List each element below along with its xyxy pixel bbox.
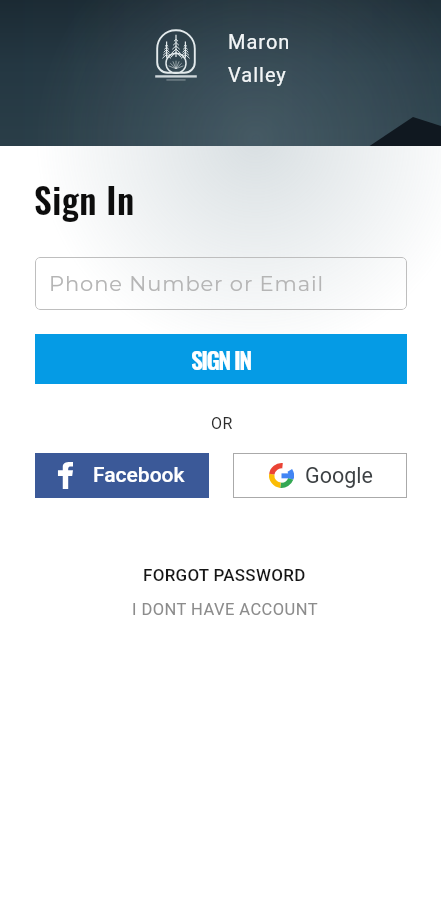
- staticText: I DONT HAVE ACCOUNT: [132, 600, 319, 619]
- staticText: FORGOT PASSWORD: [143, 565, 306, 585]
- button[interactable]: FORGOT PASSWORD: [137, 563, 312, 587]
- staticText: Sign In: [34, 173, 135, 225]
- staticText: Google: [305, 463, 373, 488]
- button[interactable]: SIGN IN: [35, 334, 407, 384]
- staticText: Facebook: [93, 463, 185, 488]
- staticText: Maron: [228, 30, 291, 53]
- button[interactable]: Google: [233, 453, 407, 498]
- button[interactable]: I DONT HAVE ACCOUNT: [126, 598, 325, 621]
- button[interactable]: Facebook: [35, 453, 209, 498]
- staticText: SIGN IN: [191, 342, 251, 377]
- staticText: Phone Number or Email: [49, 271, 325, 297]
- staticText: Valley: [228, 63, 287, 86]
- staticText: OR: [211, 414, 233, 433]
- button[interactable]: Phone Number or Email: [35, 257, 407, 310]
